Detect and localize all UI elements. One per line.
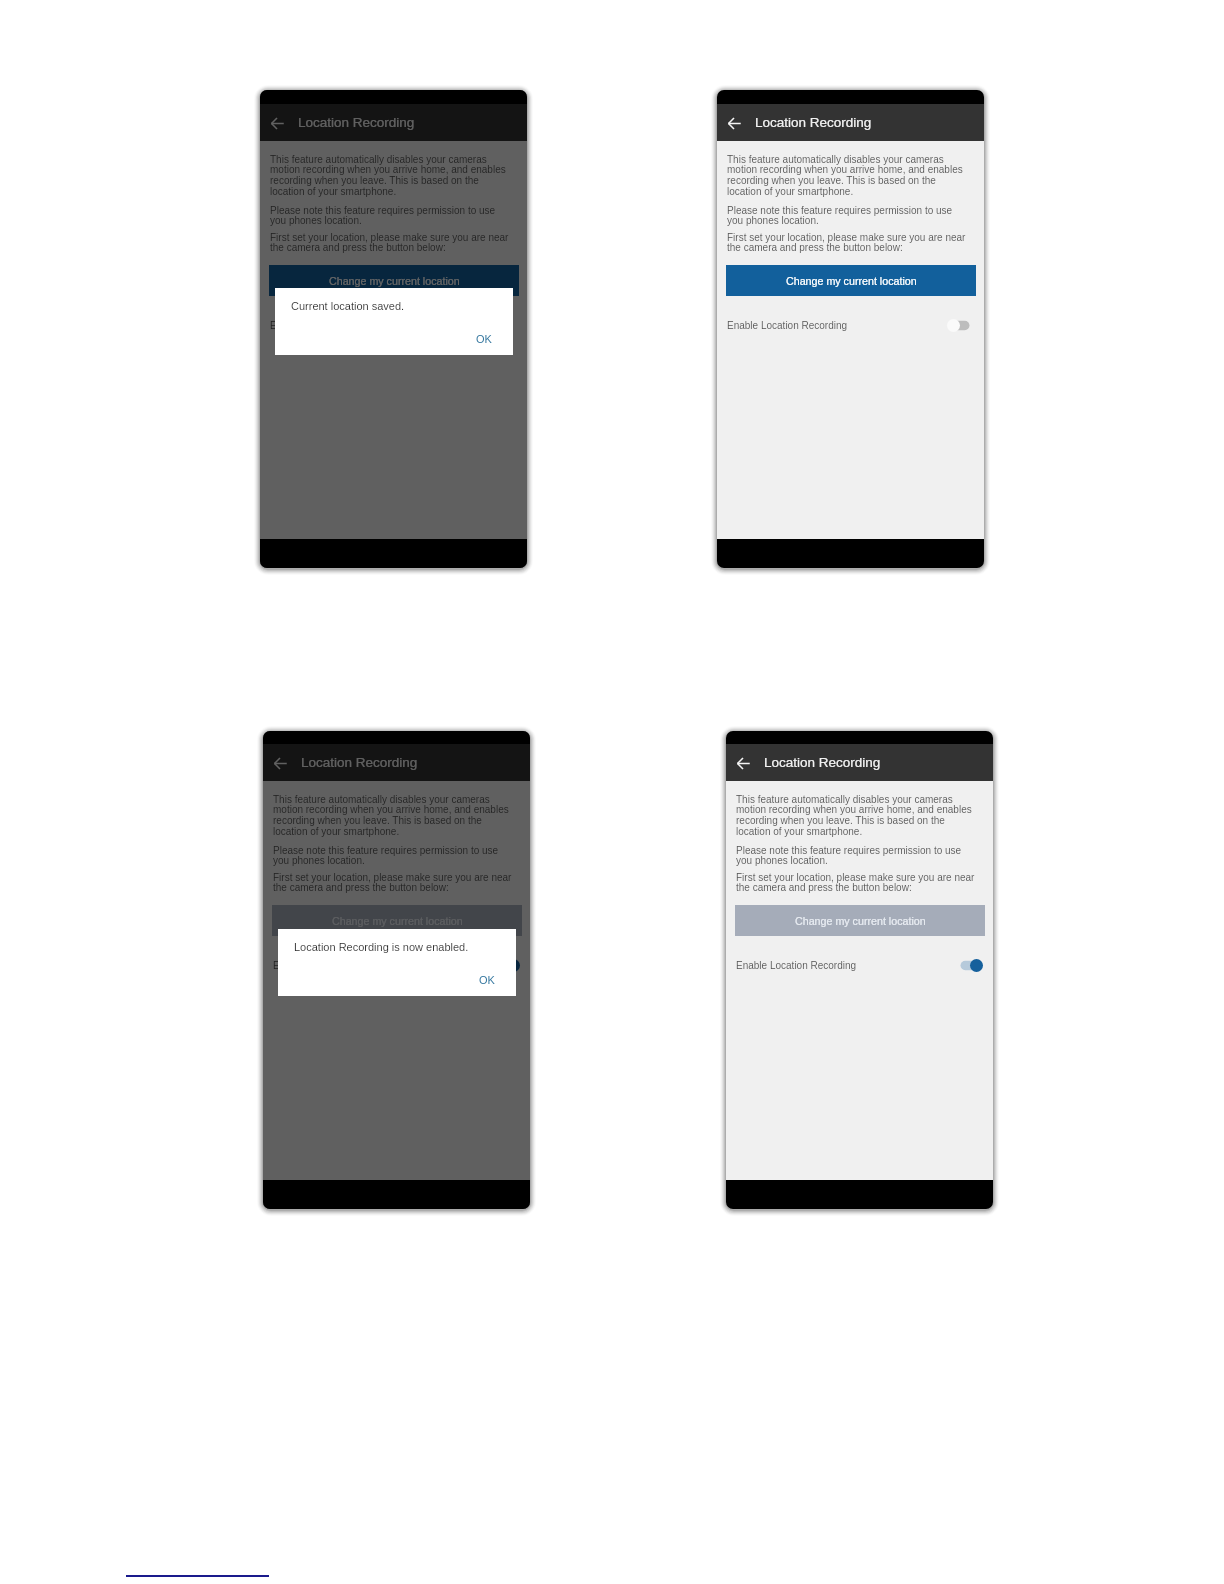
staticText: This feature automatically disables your… <box>270 154 506 198</box>
staticText: First set your location, please make sur… <box>270 232 509 254</box>
button[interactable]: Enable Location Recording <box>736 958 983 973</box>
staticText: OK <box>479 974 495 986</box>
button[interactable]: Enable Location Recording <box>273 958 520 973</box>
staticText: Location Recording <box>301 755 418 770</box>
button[interactable]: Change my current location <box>726 265 976 296</box>
button[interactable]: Location recording on <box>493 959 520 972</box>
button[interactable]: Navigate back <box>724 113 744 133</box>
staticText: Change my current location <box>786 275 917 287</box>
button[interactable]: OK <box>472 331 496 347</box>
staticText: Location Recording <box>298 115 415 130</box>
button[interactable]: Navigate back <box>270 753 290 773</box>
staticText: Change my current location <box>329 275 460 287</box>
button[interactable]: Navigate back <box>267 113 287 133</box>
button[interactable]: Change my current location <box>269 265 519 296</box>
button[interactable]: Change my current location <box>735 905 985 936</box>
staticText: Please note this feature requires permis… <box>727 205 953 227</box>
button[interactable]: Location recording off <box>490 319 517 332</box>
staticText: Please note this feature requires permis… <box>273 845 499 867</box>
staticText: Change my current location <box>795 915 926 927</box>
staticText: Enable Location Recording <box>273 960 394 971</box>
staticText: This feature automatically disables your… <box>273 794 509 838</box>
button[interactable]: Location recording on <box>956 959 983 972</box>
button[interactable]: Navigate back <box>733 753 753 773</box>
staticText: Enable Location Recording <box>727 320 848 331</box>
staticText: First set your location, please make sur… <box>273 872 512 894</box>
button[interactable]: Enable Location Recording <box>727 318 974 333</box>
staticText: This feature automatically disables your… <box>736 794 972 838</box>
staticText: OK <box>476 333 492 345</box>
staticText: This feature automatically disables your… <box>727 154 963 198</box>
staticText: Enable Location Recording <box>736 960 857 971</box>
button[interactable]: Enable Location Recording <box>270 318 517 333</box>
staticText: Location Recording <box>755 115 872 130</box>
staticText: Location Recording is now enabled. <box>294 941 469 953</box>
staticText: First set your location, please make sur… <box>736 872 975 894</box>
staticText: First set your location, please make sur… <box>727 232 966 254</box>
staticText: Current location saved. <box>291 300 405 312</box>
staticText: Please note this feature requires permis… <box>736 845 962 867</box>
staticText: Please note this feature requires permis… <box>270 205 496 227</box>
button[interactable]: OK <box>475 972 499 988</box>
staticText: Location Recording <box>764 755 881 770</box>
staticText: Change my current location <box>332 915 463 927</box>
button[interactable]: Change my current location <box>272 905 522 936</box>
button[interactable]: Location recording off <box>947 319 974 332</box>
staticText: Enable Location Recording <box>270 320 391 331</box>
